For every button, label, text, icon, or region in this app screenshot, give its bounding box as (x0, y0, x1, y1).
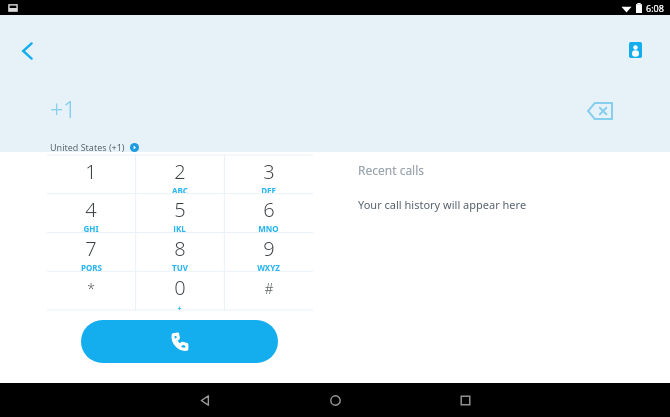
staticText: 9 (263, 235, 275, 262)
staticText: 8 (174, 235, 186, 262)
staticText: 3 (263, 158, 275, 185)
button[interactable]: Back (140, 383, 270, 417)
staticText: PQRS (81, 262, 102, 271)
staticText: 6:08 (646, 2, 664, 14)
button[interactable]: Recents (400, 383, 530, 417)
staticText: 4 (85, 196, 97, 223)
staticText: JKL (173, 223, 186, 232)
staticText: 5 (174, 196, 186, 223)
staticText: * (87, 279, 95, 298)
staticText: TUV (172, 262, 188, 271)
button[interactable]: # (224, 271, 313, 310)
staticText: 0 (174, 274, 186, 301)
staticText: United States (+1) (50, 141, 125, 153)
button[interactable]: Contacts (616, 31, 654, 69)
button[interactable]: Back (8, 31, 48, 71)
button[interactable]: 6 (224, 193, 313, 232)
staticText: + (177, 304, 182, 310)
staticText: MNO (258, 223, 279, 232)
button[interactable]: 4 (47, 193, 135, 232)
staticText: GHI (83, 223, 99, 232)
button[interactable]: United States (+1) (50, 141, 139, 153)
staticText: +1 (50, 93, 77, 124)
staticText: 1 (85, 158, 97, 185)
staticText: ABC (172, 185, 188, 193)
staticText: 7 (85, 235, 97, 262)
button[interactable]: 8 (135, 232, 224, 271)
button[interactable]: Home (270, 383, 400, 417)
staticText: # (264, 279, 274, 298)
staticText: WXYZ (257, 262, 280, 271)
button[interactable]: 5 (135, 193, 224, 232)
staticText: Recent calls (358, 162, 425, 178)
button[interactable]: 7 (47, 232, 135, 271)
staticText: 6 (263, 196, 275, 223)
button[interactable]: * (47, 271, 135, 310)
button[interactable]: 0 (135, 271, 224, 310)
button[interactable]: 9 (224, 232, 313, 271)
staticText: 2 (174, 158, 186, 185)
button[interactable]: Backspace (578, 89, 622, 133)
button[interactable]: 2 (135, 155, 224, 193)
staticText: DEF (261, 185, 276, 193)
button[interactable]: Call (81, 320, 278, 363)
staticText: Your call history will appear here (358, 197, 527, 212)
button[interactable]: 3 (224, 155, 313, 193)
button[interactable]: 1 (47, 155, 135, 193)
